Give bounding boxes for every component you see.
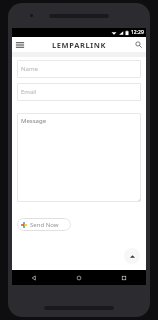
staticText: LEMPARLINK: [52, 40, 107, 50]
button[interactable]: Send Now: [17, 218, 71, 231]
staticText: Name: [21, 65, 38, 73]
button[interactable]: Search: [131, 37, 146, 52]
button[interactable]: Message: [17, 113, 141, 202]
button[interactable]: Open navigation menu: [12, 37, 27, 52]
button[interactable]: Name: [17, 60, 141, 78]
button[interactable]: Email: [17, 83, 141, 101]
staticText: Email: [21, 88, 37, 96]
button[interactable]: Recent apps: [101, 270, 146, 285]
button[interactable]: Home: [56, 270, 101, 285]
staticText: Message: [21, 117, 47, 125]
button[interactable]: Scroll to top: [124, 248, 140, 264]
button[interactable]: Back: [12, 270, 56, 285]
staticText: 12:29: [131, 29, 144, 36]
staticText: Send Now: [30, 221, 59, 229]
